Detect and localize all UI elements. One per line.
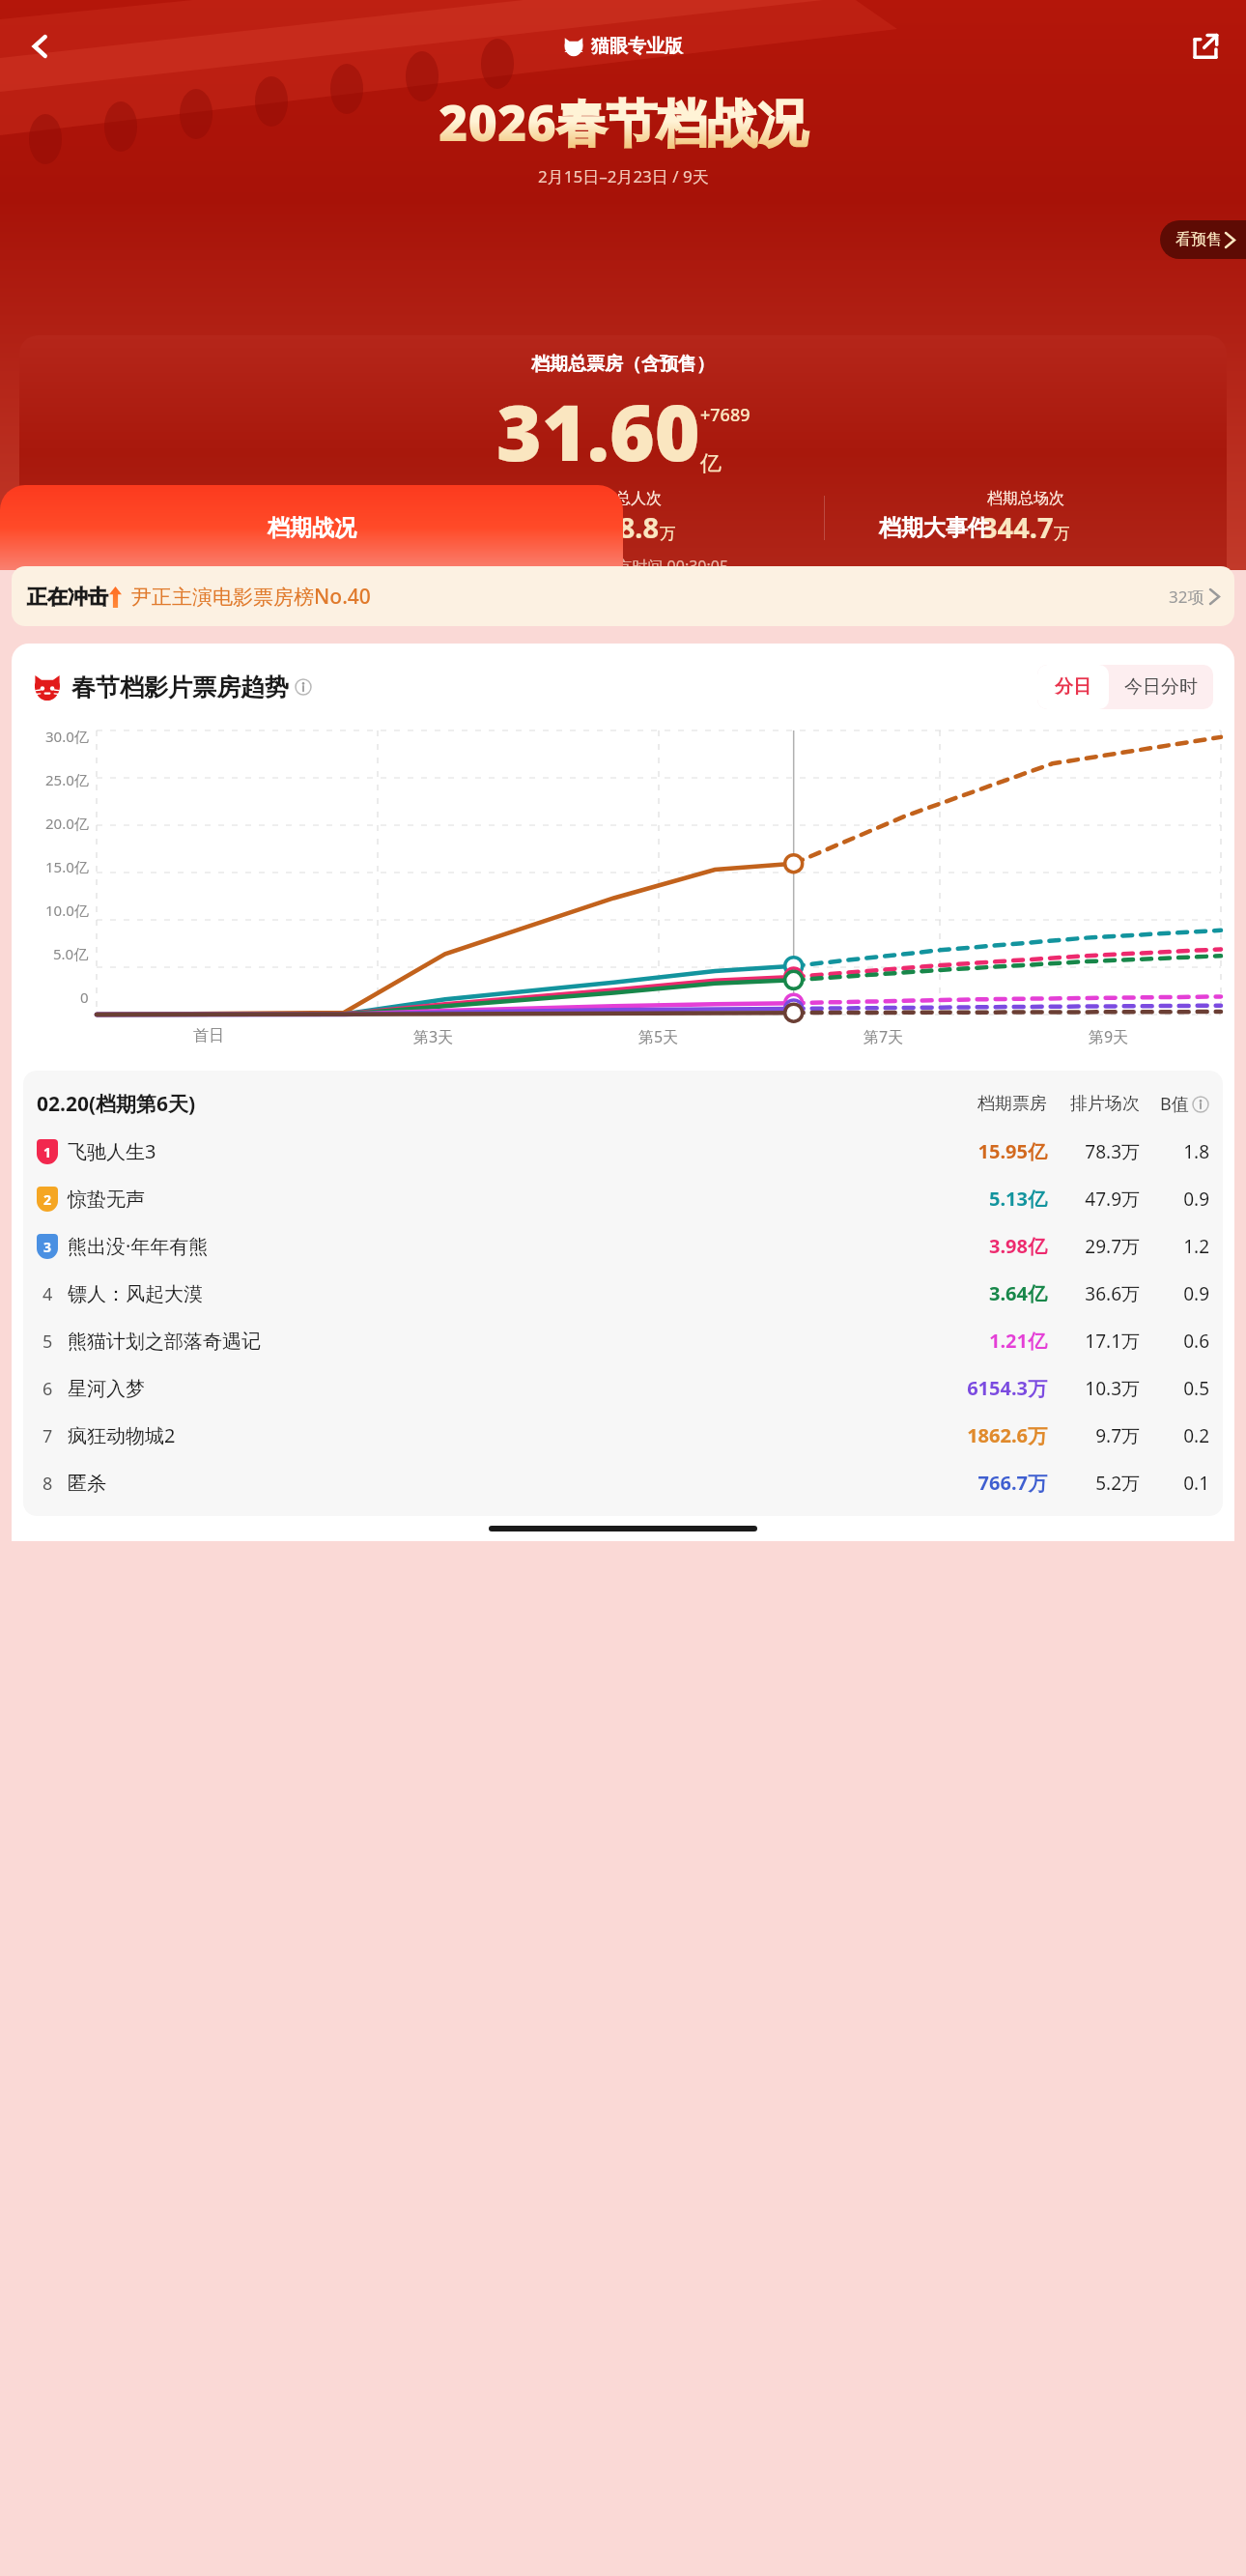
staticText: 15.0亿 <box>45 857 89 876</box>
staticText: 3.64亿 <box>943 1280 1047 1306</box>
staticText: 0.9 <box>1140 1187 1209 1212</box>
staticText: 档期战况 <box>268 514 356 542</box>
button[interactable]: 7 <box>37 1412 1209 1459</box>
staticText: 亿 <box>700 450 722 477</box>
staticText: 今日分时 <box>1124 675 1198 699</box>
staticText: 5 <box>42 1330 53 1354</box>
staticText: 1.21亿 <box>943 1328 1047 1354</box>
staticText: 1.8 <box>1140 1139 1209 1164</box>
staticText: 6154.3万 <box>943 1375 1047 1401</box>
staticText: 档期票房 <box>943 1093 1047 1115</box>
staticText: 正在冲击 <box>27 585 108 610</box>
staticText: 0.2 <box>1140 1423 1209 1448</box>
staticText: 10.0亿 <box>45 901 89 920</box>
staticText: 6438.8 <box>571 508 660 546</box>
staticText: 4 <box>42 1282 53 1306</box>
button[interactable]: 6 <box>37 1364 1209 1412</box>
staticText: +7689 <box>700 403 750 427</box>
button[interactable]: 8 <box>37 1459 1209 1506</box>
button[interactable]: 5 <box>37 1317 1209 1364</box>
button[interactable]: 正在冲击 <box>12 566 1234 626</box>
button[interactable]: 档期战况 <box>0 485 623 570</box>
staticText: 2026春节档战况 <box>439 87 807 156</box>
button[interactable]: 1 <box>37 1128 1209 1175</box>
staticText: 档期第6天 / 北京时间 00:30:05 <box>517 556 729 570</box>
staticText: 0.1 <box>1140 1471 1209 1496</box>
staticText: 36.6万 <box>1047 1281 1140 1306</box>
staticText: 8 <box>42 1472 53 1496</box>
staticText: 2月15日–2月23日 / 9天 <box>538 165 709 187</box>
staticText: 5.2万 <box>1047 1471 1140 1496</box>
button[interactable]: 2 <box>37 1175 1209 1222</box>
staticText: 猫眼专业版 <box>591 35 683 58</box>
staticText: 首日 <box>193 1026 224 1045</box>
button[interactable]: Share <box>1182 23 1229 70</box>
staticText: 9.7万 <box>1047 1423 1140 1448</box>
staticText: 疯狂动物城2 <box>68 1422 176 1448</box>
staticText: 第3天 <box>413 1026 454 1047</box>
staticText: 0 <box>80 987 89 1007</box>
button[interactable]: 分日 <box>1037 665 1109 709</box>
staticText: 1 <box>43 1143 52 1161</box>
button[interactable]: 档期大事件 <box>623 485 1246 570</box>
staticText: 3.98亿 <box>943 1233 1047 1259</box>
staticText: 25.0亿 <box>45 770 89 789</box>
button[interactable]: 4 <box>37 1270 1209 1317</box>
staticText: 02.20(档期第6天) <box>37 1090 943 1118</box>
staticText: 排片场次 <box>1047 1093 1140 1115</box>
button[interactable]: 看预售 <box>1160 220 1246 259</box>
staticText: 档期总票房（含预售） <box>531 353 715 376</box>
staticText: 春节档影片票房趋势 <box>71 673 289 702</box>
staticText: 镖人：风起大漠 <box>68 1282 203 1306</box>
staticText: 飞驰人生3 <box>68 1138 156 1164</box>
staticText: 匿杀 <box>68 1472 106 1496</box>
staticText: B值 <box>1160 1092 1189 1116</box>
staticText: 766.7万 <box>943 1470 1047 1496</box>
staticText: 12.78 <box>176 508 248 546</box>
staticText: 看预售 <box>1175 230 1222 249</box>
staticText: 344.7 <box>981 508 1054 546</box>
staticText: 第9天 <box>1089 1026 1129 1047</box>
staticText: 30.0亿 <box>45 727 89 746</box>
staticText: 5.0亿 <box>53 944 89 963</box>
staticText: 32项 <box>1169 586 1204 608</box>
staticText: 惊蛰无声 <box>68 1188 145 1212</box>
button[interactable]: Back <box>17 23 64 70</box>
staticText: 档期总场次 <box>987 489 1064 508</box>
staticText: 2 <box>43 1190 52 1209</box>
staticText: 1.2 <box>1140 1234 1209 1259</box>
staticText: 第7天 <box>864 1026 904 1047</box>
staticText: 第5天 <box>638 1026 679 1047</box>
staticText: 0.5 <box>1140 1376 1209 1401</box>
staticText: 分日 <box>1055 675 1091 699</box>
staticText: 5.13亿 <box>943 1186 1047 1212</box>
staticText: 3 <box>43 1238 52 1256</box>
staticText: 熊出没·年年有熊 <box>68 1233 209 1259</box>
staticText: 熊猫计划之部落奇遇记 <box>68 1330 261 1354</box>
staticText: 星河入梦 <box>68 1377 145 1401</box>
button[interactable]: 3 <box>37 1222 1209 1270</box>
staticText: 档期大事件 <box>879 514 990 542</box>
staticText: 万 <box>1054 524 1070 544</box>
staticText: 档期总人次 <box>584 489 662 508</box>
staticText: 20.0亿 <box>45 814 89 833</box>
staticText: 78.3万 <box>1047 1139 1140 1164</box>
staticText: 万 <box>660 524 676 544</box>
staticText: 尹正主演电影票房榜No.40 <box>131 583 371 611</box>
staticText: 17.1万 <box>1047 1329 1140 1354</box>
staticText: 29.7万 <box>1047 1234 1140 1259</box>
button[interactable]: 今日分时 <box>1109 665 1213 709</box>
staticText: 亿 <box>248 524 265 544</box>
staticText: 1862.6万 <box>943 1422 1047 1448</box>
staticText: 15.95亿 <box>943 1138 1047 1164</box>
staticText: 0.6 <box>1140 1329 1209 1354</box>
staticText: 6 <box>42 1377 53 1401</box>
staticText: 31.60 <box>496 378 700 483</box>
staticText: 0.9 <box>1140 1281 1209 1306</box>
staticText: 7 <box>42 1424 53 1448</box>
staticText: 47.9万 <box>1047 1187 1140 1212</box>
staticText: 10.3万 <box>1047 1376 1140 1401</box>
